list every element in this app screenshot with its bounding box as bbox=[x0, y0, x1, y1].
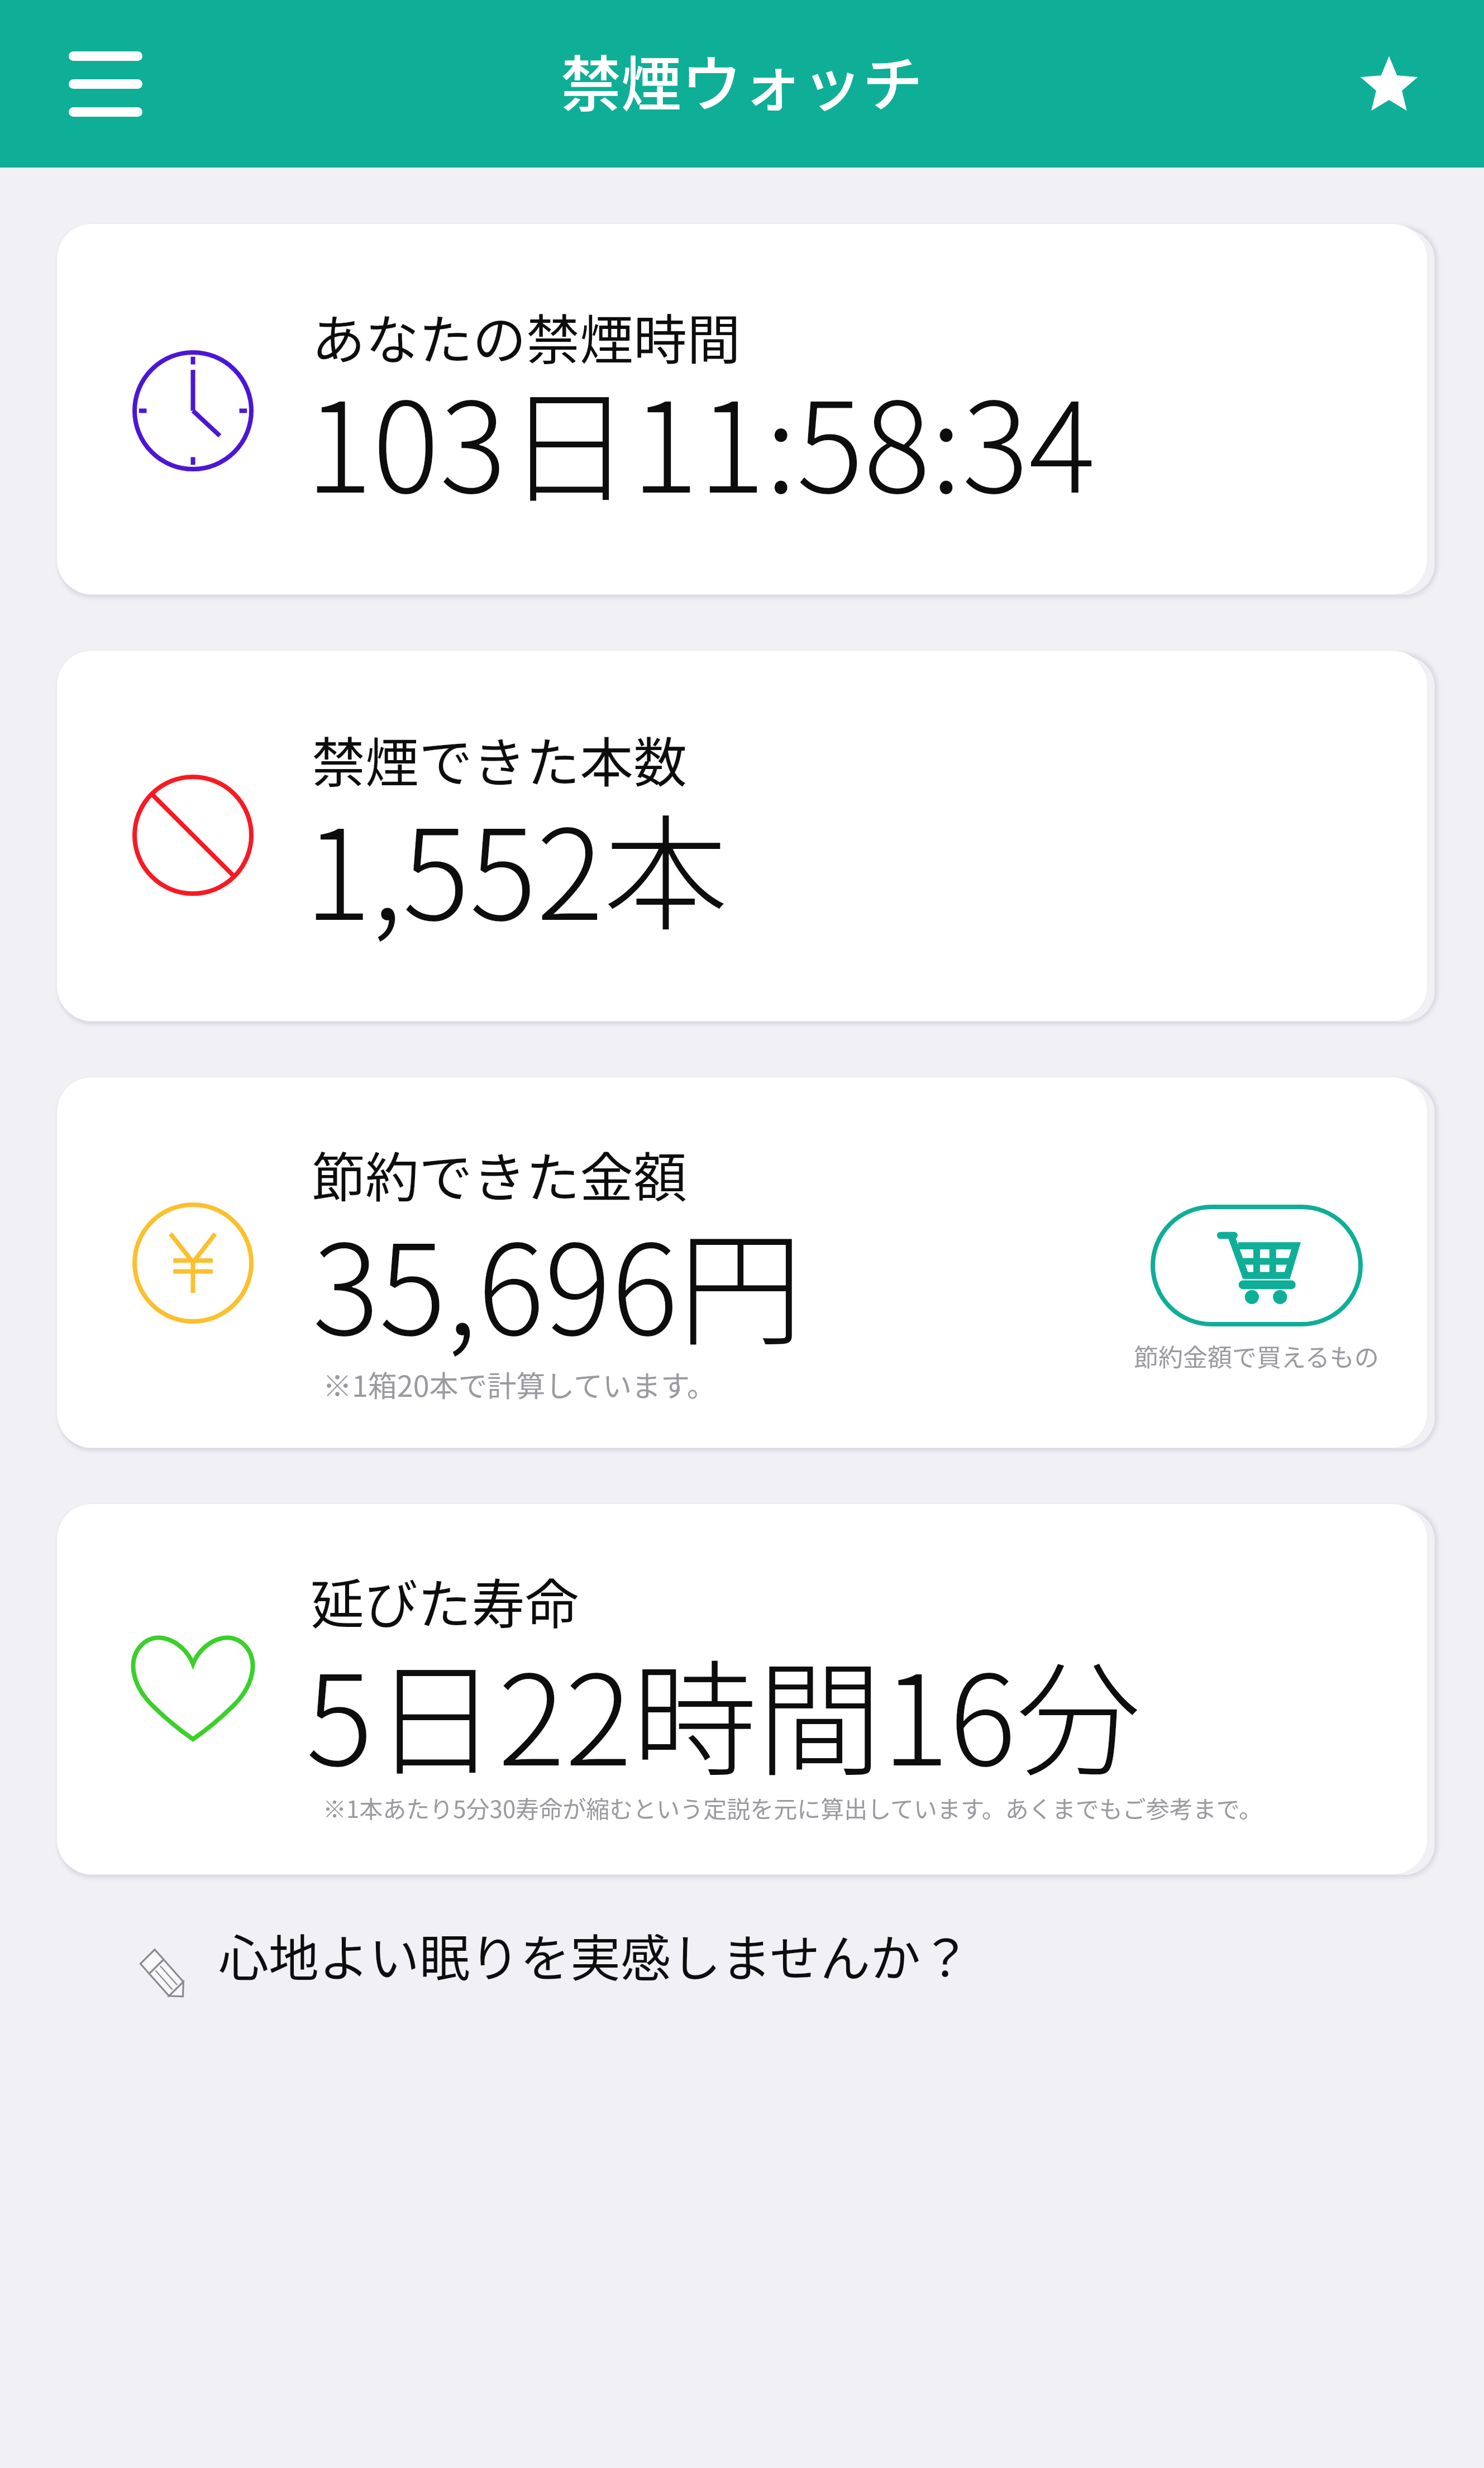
staticText: 35,696円 bbox=[312, 1190, 804, 1371]
staticText: ※1本あたり5分30寿命が縮むという定説を元に算出しています。あくまでもご参考ま… bbox=[323, 1791, 1263, 1825]
staticText: 心地よい眠りを実感しませんか？ bbox=[218, 1918, 971, 1991]
staticText: あなたの禁煙時間 bbox=[312, 297, 741, 375]
button[interactable]: 節約できた金額 bbox=[57, 1077, 1427, 1448]
staticText: 節約できた金額 bbox=[312, 1135, 687, 1212]
staticText: 禁煙ウォッチ bbox=[561, 36, 923, 123]
staticText: 1,552本 bbox=[304, 775, 729, 956]
button[interactable]: 心地よい眠りを実感しませんか？ bbox=[0, 1918, 1484, 2002]
staticText: ※1箱20本で計算しています。 bbox=[323, 1363, 716, 1405]
button[interactable]: 延びた寿命 bbox=[57, 1504, 1427, 1874]
button[interactable]: 禁煙できた本数 bbox=[57, 651, 1427, 1021]
staticText: 5日22時間16分 bbox=[306, 1620, 1142, 1801]
staticText: 延びた寿命 bbox=[311, 1562, 579, 1639]
staticText: 103日11:58:34 bbox=[306, 347, 1096, 528]
button[interactable]: Favorite bbox=[1322, 17, 1456, 151]
button[interactable]: あなたの禁煙時間 bbox=[57, 224, 1427, 594]
staticText: 節約金額で買えるもの bbox=[1134, 1338, 1379, 1374]
button[interactable]: What you could buy with your savings bbox=[1134, 1207, 1379, 1374]
button[interactable]: Open navigation menu bbox=[33, 11, 178, 156]
staticText: 禁煙できた本数 bbox=[312, 720, 687, 798]
